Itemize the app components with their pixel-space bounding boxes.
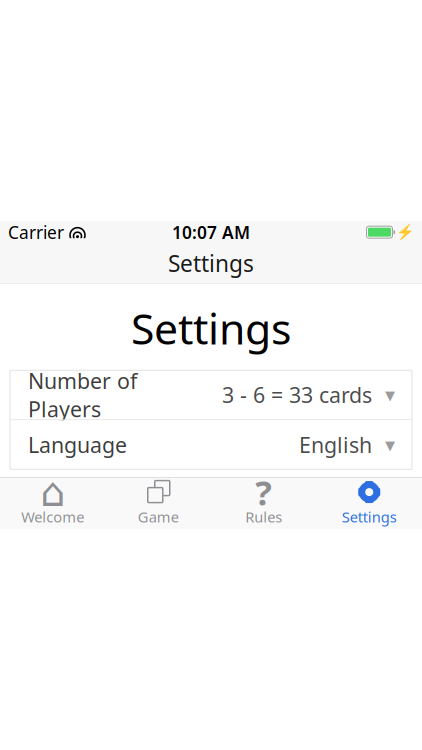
staticText: Game (138, 507, 179, 527)
staticText: Settings (342, 507, 397, 527)
button[interactable]: ⌂ (0, 479, 105, 528)
staticText: Number of Players (28, 366, 137, 423)
staticText: English (299, 431, 372, 459)
button[interactable]: Number of Players (10, 370, 412, 419)
staticText: ▾ (385, 433, 395, 456)
staticText: Welcome (21, 507, 84, 527)
staticText: ⌂ (40, 469, 65, 515)
staticText: ⚡ (396, 224, 414, 241)
staticText: Settings (131, 300, 291, 356)
staticText: Language (28, 431, 127, 459)
staticText: 3 - 6 = 33 cards (222, 381, 372, 409)
staticText: ? (255, 469, 272, 515)
staticText: Settings (168, 248, 254, 278)
staticText: ▾ (385, 383, 395, 406)
staticText: 10:07 AM (172, 221, 250, 244)
button[interactable]: Game (105, 479, 211, 528)
button[interactable]: ? (211, 479, 316, 528)
button[interactable]: Language (10, 420, 412, 469)
staticText: Rules (245, 507, 282, 527)
staticText: Carrier (8, 221, 64, 244)
button[interactable]: Settings (316, 479, 422, 528)
